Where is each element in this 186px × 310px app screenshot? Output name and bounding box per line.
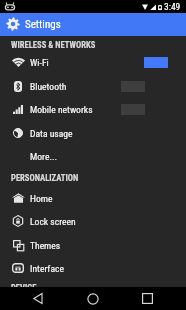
button[interactable]: Bluetooth switch xyxy=(121,80,168,92)
button[interactable]: Back xyxy=(10,287,65,310)
button[interactable]: Recent apps xyxy=(120,287,175,310)
button[interactable]: Wi-Fi xyxy=(0,51,186,73)
staticText: PERSONALIZATION xyxy=(11,173,79,183)
button[interactable]: Lock screen xyxy=(0,210,186,232)
staticText: Interface xyxy=(30,263,64,274)
staticText: DEVICE xyxy=(11,283,37,293)
button[interactable]: Themes xyxy=(0,234,186,256)
staticText: WIRELESS & NETWORKS xyxy=(11,40,96,50)
staticText: Lock screen xyxy=(30,216,76,227)
button[interactable]: Mobile networks xyxy=(0,98,186,120)
button[interactable]: Interface xyxy=(0,257,186,279)
button[interactable]: Bluetooth xyxy=(0,75,186,97)
staticText: Themes xyxy=(30,240,61,251)
button[interactable]: Data usage xyxy=(0,122,186,144)
button[interactable]: Wi-Fi switch xyxy=(121,56,168,68)
button[interactable]: More... xyxy=(0,145,186,167)
button[interactable]: Home xyxy=(0,187,186,209)
staticText: Home xyxy=(30,193,53,204)
button[interactable]: Mobile networks switch xyxy=(121,103,168,115)
button[interactable]: Home xyxy=(65,287,120,310)
staticText: Settings xyxy=(25,18,61,31)
staticText: Wi-Fi xyxy=(30,57,49,68)
staticText: Bluetooth xyxy=(30,81,67,92)
staticText: Mobile networks xyxy=(30,104,93,115)
button[interactable]: Settings xyxy=(0,13,186,36)
staticText: 3:49 xyxy=(164,1,181,12)
staticText: Data usage xyxy=(30,128,73,139)
staticText: More... xyxy=(30,151,57,162)
